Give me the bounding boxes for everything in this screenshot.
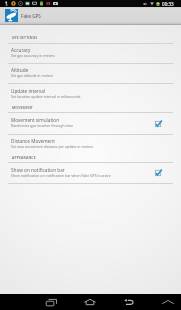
staticText: MOVEMENT: [12, 105, 33, 110]
button[interactable]: Movement simulation: [145, 113, 181, 134]
button[interactable]: Hide: [150, 294, 181, 310]
staticText: Set location update interval in miliseco…: [11, 94, 81, 99]
staticText: Update interval: [11, 88, 45, 94]
staticText: Movement simulation: [11, 117, 60, 123]
button[interactable]: Update interval: [0, 84, 181, 104]
staticText: Set gps accuracy in meters: [11, 53, 55, 58]
staticText: Show notification on notification bar wh…: [11, 173, 111, 178]
staticText: Distance Movement: [11, 138, 55, 144]
staticText: Altitude: [11, 67, 29, 73]
staticText: Set gps altitude in meters: [11, 73, 54, 78]
button[interactable]: Movement simulation: [0, 113, 181, 134]
button[interactable]: Home: [72, 294, 108, 310]
staticText: Set max movement distance per update in …: [11, 144, 94, 149]
staticText: Randomize gps location through time: [11, 123, 73, 128]
button[interactable]: Distance Movement: [0, 135, 181, 154]
staticText: Accuracy: [11, 47, 31, 53]
button[interactable]: Accuracy: [0, 44, 181, 63]
button[interactable]: Show on notification bar: [0, 163, 181, 183]
button[interactable]: Show on notification bar: [145, 163, 181, 183]
staticText: APPEARANCE: [12, 155, 36, 160]
staticText: Show on notification bar: [11, 167, 65, 173]
staticText: GPS SETTINGS: [12, 35, 38, 40]
button[interactable]: Altitude: [0, 64, 181, 83]
staticText: 00:33: [162, 1, 174, 7]
button[interactable]: Back: [110, 294, 146, 310]
staticText: Fake GPS: [21, 13, 41, 19]
button[interactable]: Recents: [33, 294, 69, 310]
